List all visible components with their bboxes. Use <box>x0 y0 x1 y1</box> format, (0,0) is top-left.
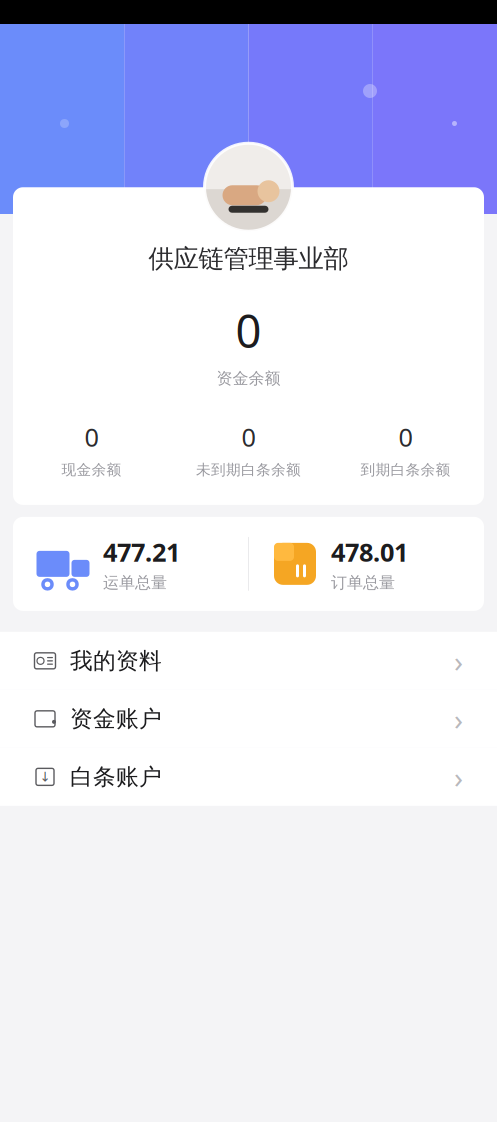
staticText: 0 <box>235 300 261 361</box>
button[interactable]: 我的资料 <box>0 632 497 690</box>
staticText: 运单总量 <box>103 573 167 593</box>
staticText: 供应链管理事业部 <box>148 243 348 274</box>
staticText: › <box>454 757 463 796</box>
button[interactable]: ↓ <box>0 748 497 806</box>
staticText: 资金账户 <box>70 705 162 733</box>
staticText: 订单总量 <box>331 573 395 593</box>
staticText: 0 <box>84 420 98 454</box>
staticText: 到期白条余额 <box>360 461 450 479</box>
staticText: 我的资料 <box>70 647 162 675</box>
staticText: 白条账户 <box>70 763 162 791</box>
staticText: 477.21 <box>103 535 180 569</box>
staticText: 未到期白条余额 <box>196 461 301 479</box>
staticText: 478.01 <box>331 535 408 569</box>
button[interactable]: 资金账户 <box>0 690 497 748</box>
staticText: 0 <box>398 420 412 454</box>
staticText: 现金余额 <box>61 461 121 479</box>
staticText: ↓ <box>39 769 50 784</box>
staticText: 0 <box>241 420 255 454</box>
staticText: › <box>454 641 463 680</box>
staticText: 资金余额 <box>216 369 280 388</box>
staticText: › <box>454 699 463 738</box>
